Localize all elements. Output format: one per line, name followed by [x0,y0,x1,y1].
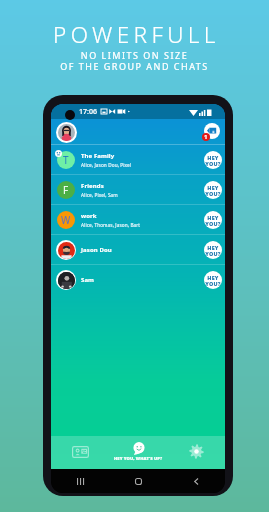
staticText: HEY YOU? [205,274,221,287]
staticText: POWERFULL [53,19,220,50]
staticText: 17:06 [79,107,97,117]
staticText: NO LIMITS ON SIZE OF THE GROUP AND CHATS [60,49,209,73]
button[interactable]: W [51,205,225,235]
staticText: HEY YOU, WHAT'S UP? [114,456,163,462]
button[interactable]: Sam [51,265,225,295]
button[interactable]: Profile [56,122,77,143]
staticText: work [81,212,97,220]
staticText: T [63,153,69,167]
button[interactable]: HEY YOU, WHAT'S UP? [109,436,167,469]
staticText: W [61,213,71,227]
staticText: HEY YOU? [205,244,221,257]
staticText: HEY YOU? [205,214,221,227]
button[interactable]: Contacts [51,436,109,469]
button[interactable]: T [51,145,225,175]
staticText: Jason Dou [81,246,112,254]
staticText: F [63,183,69,197]
staticText: Sam [81,276,95,284]
staticText: Alice, Jason Dou, Pixel [81,162,132,168]
staticText: Friends [81,182,104,190]
staticText: Alice, Pixel, Sam [81,192,118,198]
button[interactable]: Jason Dou [51,235,225,265]
staticText: 1 [204,133,208,141]
staticText: Alice, Thomas, Jason, Bart [81,222,141,228]
button[interactable]: Settings [167,436,225,469]
button[interactable]: Home [109,469,167,493]
staticText: HEY YOU? [205,154,221,167]
staticText: HEY YOU? [205,184,221,197]
staticText: The Family [81,152,115,160]
button[interactable]: F [51,175,225,205]
button[interactable]: Back [167,469,225,493]
button[interactable]: New chat [202,123,220,141]
button[interactable]: Recents [51,469,109,493]
